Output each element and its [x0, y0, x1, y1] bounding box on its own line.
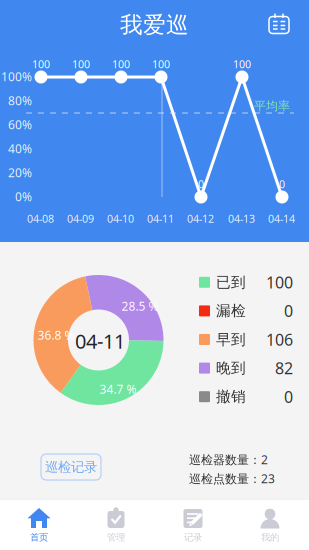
staticText: 100: [72, 57, 90, 71]
staticText: 04-14: [268, 211, 295, 226]
staticText: 0: [279, 177, 285, 191]
staticText: 管理: [107, 532, 125, 543]
staticText: 巡检点数量：23: [189, 470, 275, 486]
button[interactable]: Calendar: [259, 3, 299, 43]
staticText: 我爱巡: [120, 11, 189, 39]
staticText: 100: [32, 57, 50, 71]
staticText: 记录: [184, 532, 202, 543]
staticText: 34.7 %: [99, 381, 136, 397]
staticText: 40%: [8, 140, 32, 156]
staticText: 撤销: [216, 388, 246, 406]
staticText: 巡检记录: [45, 459, 97, 475]
staticText: 平均率: [254, 99, 290, 113]
staticText: 04-11: [75, 328, 125, 354]
staticText: 20%: [8, 164, 32, 180]
staticText: 04-12: [187, 211, 214, 226]
button[interactable]: 首页: [0, 499, 77, 550]
button[interactable]: 管理: [77, 499, 154, 550]
staticText: 04-09: [67, 211, 94, 226]
staticText: 100: [152, 57, 170, 71]
staticText: 0: [284, 386, 293, 407]
staticText: 100: [266, 272, 293, 293]
staticText: 漏检: [216, 302, 246, 320]
staticText: 106: [266, 329, 293, 350]
staticText: 0: [198, 177, 204, 191]
staticText: 82: [275, 357, 293, 379]
staticText: 0: [284, 300, 293, 321]
staticText: 60%: [8, 116, 32, 132]
staticText: 巡检器数量：2: [189, 451, 268, 467]
staticText: 0%: [15, 188, 32, 204]
staticText: 04-13: [228, 211, 255, 226]
staticText: 04-10: [107, 211, 134, 226]
staticText: 100: [112, 57, 130, 71]
staticText: 已到: [216, 273, 246, 291]
staticText: 36.8 %: [37, 327, 74, 343]
staticText: 100%: [1, 68, 32, 84]
staticText: 首页: [30, 532, 48, 543]
staticText: 28.5 %: [121, 298, 158, 314]
button[interactable]: 记录: [154, 499, 231, 550]
staticText: 80%: [8, 92, 32, 108]
staticText: 我的: [261, 532, 279, 543]
button[interactable]: 我的: [231, 499, 308, 550]
staticText: 04-08: [27, 211, 54, 226]
button[interactable]: 巡检记录: [41, 454, 101, 480]
staticText: 早到: [216, 330, 246, 348]
staticText: 100: [233, 57, 251, 71]
staticText: 晚到: [216, 359, 246, 377]
staticText: 04-11: [147, 211, 174, 226]
